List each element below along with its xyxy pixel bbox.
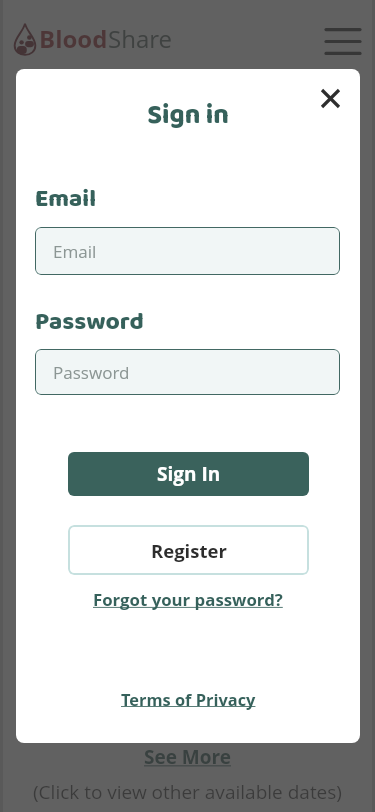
- staticText: Email: [53, 240, 97, 263]
- staticText: Password: [35, 302, 144, 341]
- staticText: Password: [53, 361, 130, 384]
- staticText: (Click to view other available dates): [33, 779, 342, 805]
- button[interactable]: Menu: [320, 18, 366, 64]
- button[interactable]: See More: [138, 741, 238, 773]
- staticText: Sign in: [16, 94, 360, 137]
- button[interactable]: Email: [35, 227, 340, 275]
- staticText: Share: [108, 22, 173, 55]
- staticText: Sign In: [157, 461, 221, 487]
- staticText: See More: [144, 744, 232, 770]
- button[interactable]: Terms of Privacy: [115, 685, 262, 713]
- button[interactable]: Password: [35, 349, 340, 395]
- staticText: Terms of Privacy: [121, 688, 256, 710]
- button[interactable]: Forgot your password?: [87, 585, 289, 614]
- staticText: Forgot your password?: [93, 588, 283, 611]
- staticText: Register: [151, 538, 227, 563]
- button[interactable]: Sign In: [68, 452, 309, 496]
- button[interactable]: Close: [313, 81, 347, 115]
- staticText: Email: [35, 179, 97, 218]
- button[interactable]: Blood: [14, 22, 173, 55]
- staticText: Blood: [39, 22, 108, 55]
- button[interactable]: Register: [68, 525, 309, 575]
